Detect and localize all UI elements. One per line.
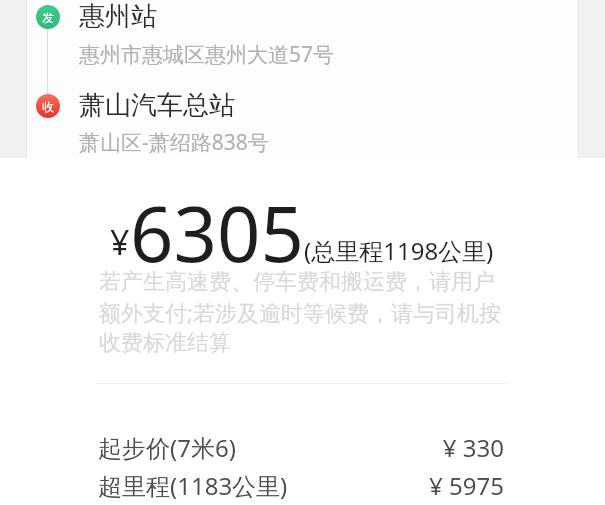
- button[interactable]: 萧山汽车总站: [79, 89, 235, 122]
- button[interactable]: 萧山区-萧绍路838号: [79, 128, 269, 157]
- staticText: (总里程1198公里): [304, 234, 494, 267]
- button[interactable]: 惠州站: [79, 0, 157, 33]
- staticText: ¥ 5975: [429, 469, 504, 502]
- staticText: 若产生高速费、停车费和搬运费，请用户额外支付;若涉及逾时等候费，请与司机按收费标…: [99, 268, 511, 357]
- staticText: 收: [42, 99, 54, 114]
- staticText: ¥: [110, 219, 130, 265]
- staticText: 超里程(1183公里): [98, 469, 288, 502]
- staticText: 发: [42, 10, 54, 25]
- button[interactable]: 惠州市惠城区惠州大道57号: [79, 40, 335, 69]
- staticText: 起步价(7米6): [98, 431, 236, 464]
- button[interactable]: Departure station: [36, 5, 60, 29]
- staticText: ¥ 330: [442, 431, 504, 464]
- button[interactable]: 起步价(7米6): [98, 430, 504, 464]
- button[interactable]: 超里程(1183公里): [98, 468, 504, 502]
- staticText: 6305: [130, 181, 304, 285]
- button[interactable]: Arrival station: [36, 94, 60, 118]
- button[interactable]: ¥: [110, 172, 494, 276]
